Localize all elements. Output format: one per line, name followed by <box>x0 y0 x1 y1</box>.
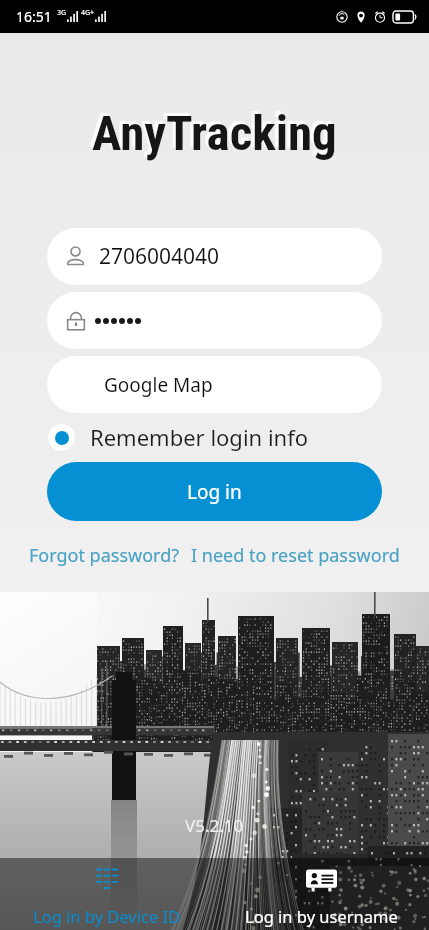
button[interactable]: I need to reset password <box>191 543 400 568</box>
button[interactable]: Log in by username <box>214 858 429 930</box>
staticText: 3G <box>57 8 67 18</box>
button[interactable]: 2706004040 <box>47 228 382 285</box>
other: Battery <box>393 11 416 23</box>
staticText: V5.2.10 <box>185 814 244 837</box>
staticText: AnyTracking <box>89 102 334 159</box>
other: Location <box>355 11 367 23</box>
staticText: AnyTracking <box>92 105 337 162</box>
button[interactable]: Log in <box>47 462 382 521</box>
button[interactable]: Log in by Device ID <box>0 858 214 930</box>
staticText: 4G+ <box>81 8 95 18</box>
staticText: 16:51 <box>16 7 52 26</box>
button[interactable] <box>47 292 382 349</box>
staticText: Remember login info <box>90 422 309 452</box>
staticText: Log in by Device ID <box>33 905 181 927</box>
button[interactable]: Remember login info <box>47 414 382 460</box>
other: Rotation locked <box>336 11 348 23</box>
button[interactable]: Google Map <box>47 356 382 413</box>
button[interactable]: Forgot password? <box>29 543 180 568</box>
staticText: 2706004040 <box>99 242 220 271</box>
staticText: Google Map <box>104 372 213 398</box>
other: Alarm <box>374 11 386 23</box>
staticText: Log in <box>187 479 242 505</box>
staticText: Log in by username <box>245 905 398 927</box>
